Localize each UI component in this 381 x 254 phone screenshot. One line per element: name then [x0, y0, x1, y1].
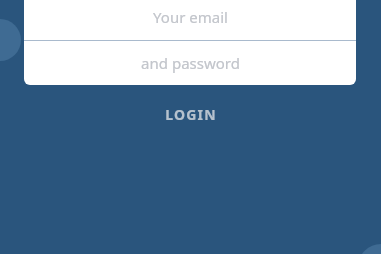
- button[interactable]: and password: [24, 41, 356, 85]
- button[interactable]: Your email: [24, 0, 356, 40]
- staticText: Your email: [153, 7, 228, 27]
- staticText: and password: [141, 53, 240, 73]
- staticText: LOGIN: [165, 105, 217, 124]
- button[interactable]: LOGIN: [0, 99, 381, 129]
